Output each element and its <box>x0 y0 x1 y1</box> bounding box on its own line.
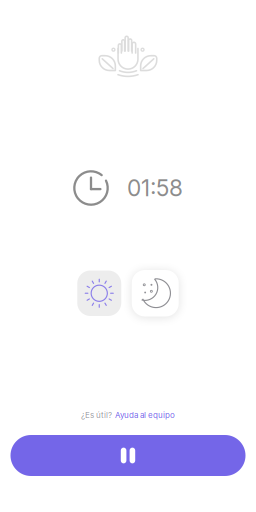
button[interactable]: ¿Es útil? <box>81 407 175 423</box>
staticText: Ayuda al equipo <box>115 410 175 420</box>
button[interactable]: Modo dia <box>77 270 121 316</box>
staticText: 01:58 <box>127 174 183 202</box>
button[interactable]: Modo noche <box>132 270 179 316</box>
staticText: ¿Es útil? <box>81 410 112 420</box>
button[interactable]: Pausar <box>10 435 245 476</box>
